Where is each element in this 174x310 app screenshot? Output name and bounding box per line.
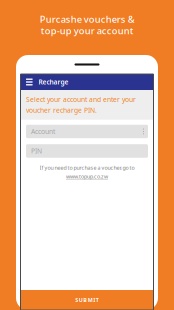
button[interactable]: Menu [20,74,39,90]
staticText: PIN [31,146,42,155]
button[interactable]: www.topup.co.zw [66,173,108,180]
staticText: Select your account and enter your vouch… [26,95,136,115]
staticText: If you need to purchase a voucher, go to [39,164,134,171]
staticText: Account [31,127,55,136]
staticText: Recharge [39,78,69,86]
button[interactable]: SUBMIT [20,290,153,310]
button[interactable]: Account [26,125,148,138]
staticText: Purcashe vouchers & top-up your account [39,13,134,37]
button[interactable]: PIN [26,144,148,158]
staticText: www.topup.co.zw [66,173,108,180]
staticText: SUBMIT [75,296,99,304]
